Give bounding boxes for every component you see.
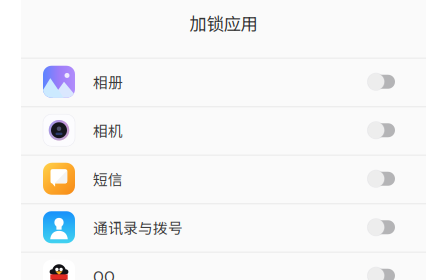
button[interactable]: 短信 — [21, 154, 426, 203]
staticText: 相册 — [93, 71, 123, 92]
button[interactable]: 通讯录与拨号 — [21, 203, 426, 251]
staticText: 通讯录与拨号 — [93, 217, 183, 238]
staticText: QQ — [93, 265, 115, 280]
staticText: 加锁应用 — [189, 10, 257, 36]
button[interactable]: QQ — [21, 251, 426, 280]
staticText: 相机 — [93, 120, 123, 141]
staticText: 短信 — [93, 168, 123, 189]
button[interactable]: 相册 — [21, 57, 426, 106]
button[interactable]: 相机 — [21, 106, 426, 154]
